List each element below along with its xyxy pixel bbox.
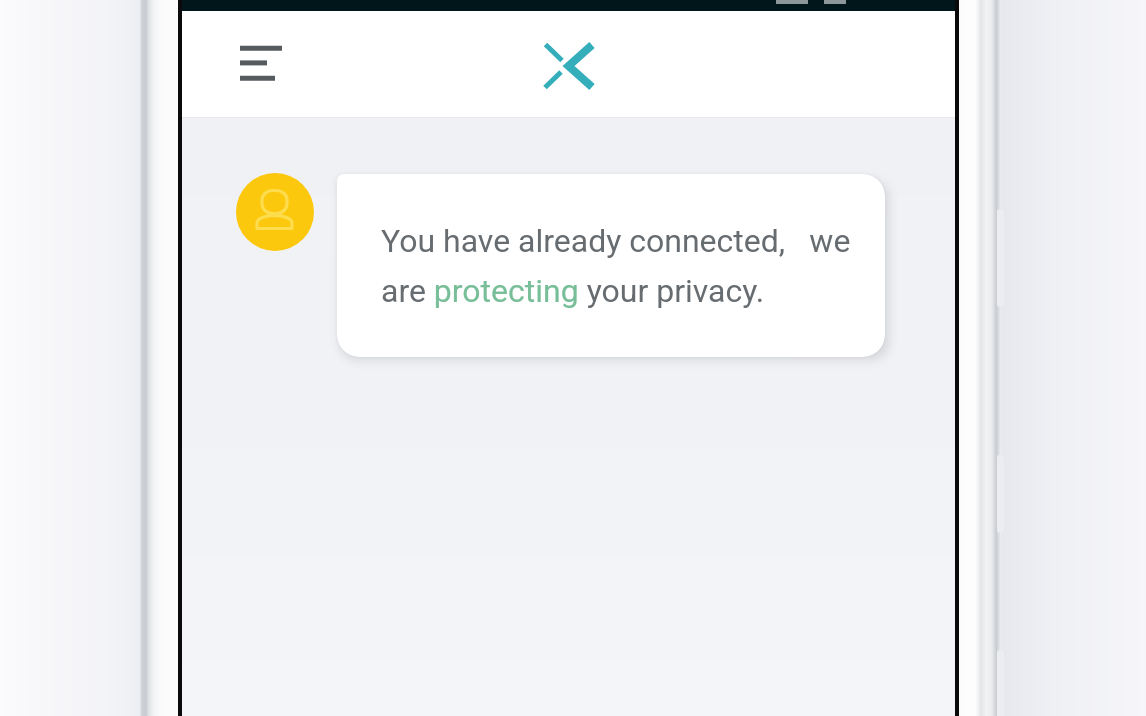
staticText: You have already connected, we are prote…: [381, 222, 851, 309]
button[interactable]: You have already connected, we are prote…: [337, 174, 885, 357]
button[interactable]: Avatar: [236, 173, 314, 251]
button[interactable]: Logo: [543, 43, 595, 89]
button[interactable]: Menu: [224, 33, 286, 95]
